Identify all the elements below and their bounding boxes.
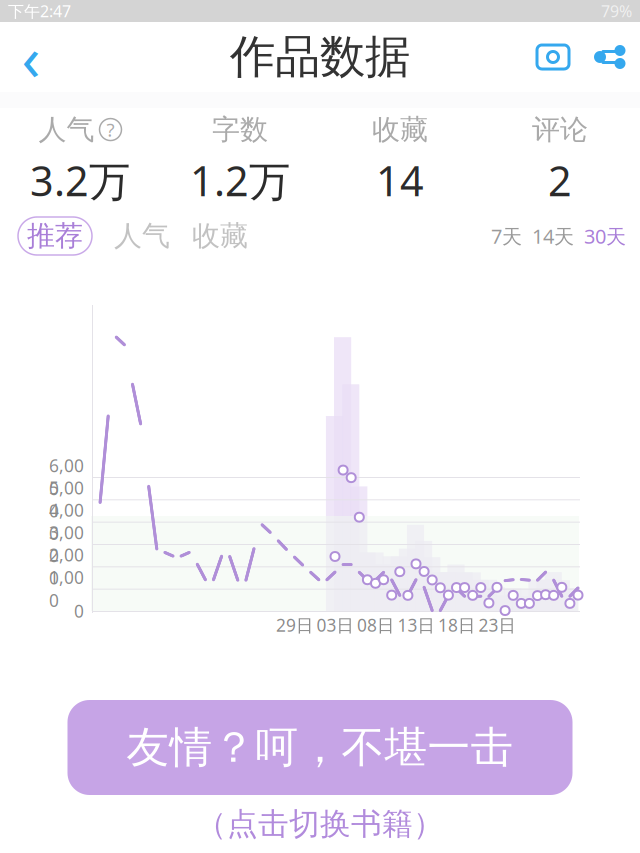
staticText: 2,000 xyxy=(49,543,84,589)
staticText: 29日 xyxy=(276,613,313,636)
button[interactable]: 人气 xyxy=(100,217,184,255)
staticText: 人气 xyxy=(114,219,170,253)
staticText: 评论 xyxy=(532,112,588,147)
button[interactable]: Share xyxy=(580,22,640,92)
staticText: 79% xyxy=(601,0,632,22)
staticText: 2 xyxy=(548,153,572,208)
button[interactable]: 7天 xyxy=(491,223,522,249)
staticText: 收藏 xyxy=(192,219,248,253)
staticText: 下午2:47 xyxy=(8,0,71,22)
staticText: 03日 xyxy=(316,613,353,636)
button[interactable]: 收藏 xyxy=(184,217,256,255)
staticText: 1.2万 xyxy=(190,153,290,208)
staticText: 0 xyxy=(74,599,84,622)
staticText: 友情？呵，不堪一击 xyxy=(126,721,513,774)
button[interactable]: Back xyxy=(0,22,62,92)
staticText: ? xyxy=(106,117,114,142)
button[interactable]: Screenshot xyxy=(526,22,580,92)
staticText: 18日 xyxy=(438,613,475,636)
staticText: 30天 xyxy=(584,223,626,249)
staticText: 推荐 xyxy=(27,219,83,253)
staticText: 人气 xyxy=(38,112,94,147)
staticText: （点击切换书籍） xyxy=(196,805,444,843)
staticText: 3.2万 xyxy=(30,153,130,208)
button[interactable]: 14天 xyxy=(532,223,574,249)
staticText: 23日 xyxy=(478,613,515,636)
staticText: 6,000 xyxy=(49,454,84,500)
button[interactable]: 推荐 xyxy=(18,217,92,255)
staticText: 14天 xyxy=(532,223,574,249)
staticText: 字数 xyxy=(212,112,268,147)
staticText: 7天 xyxy=(491,223,522,249)
staticText: 14 xyxy=(376,153,424,208)
button[interactable]: 友情？呵，不堪一击 xyxy=(67,700,572,795)
button[interactable]: （点击切换书籍） xyxy=(196,807,444,841)
button[interactable]: 30天 xyxy=(584,223,626,249)
staticText: 08日 xyxy=(357,613,394,636)
staticText: 作品数据 xyxy=(230,29,410,85)
staticText: 收藏 xyxy=(372,112,428,147)
staticText: 5,000 xyxy=(49,476,84,522)
staticText: 1,000 xyxy=(49,566,84,612)
staticText: 3,000 xyxy=(49,521,84,567)
staticText: ‹ xyxy=(21,16,40,98)
staticText: 13日 xyxy=(397,613,434,636)
staticText: 4,000 xyxy=(49,499,84,545)
